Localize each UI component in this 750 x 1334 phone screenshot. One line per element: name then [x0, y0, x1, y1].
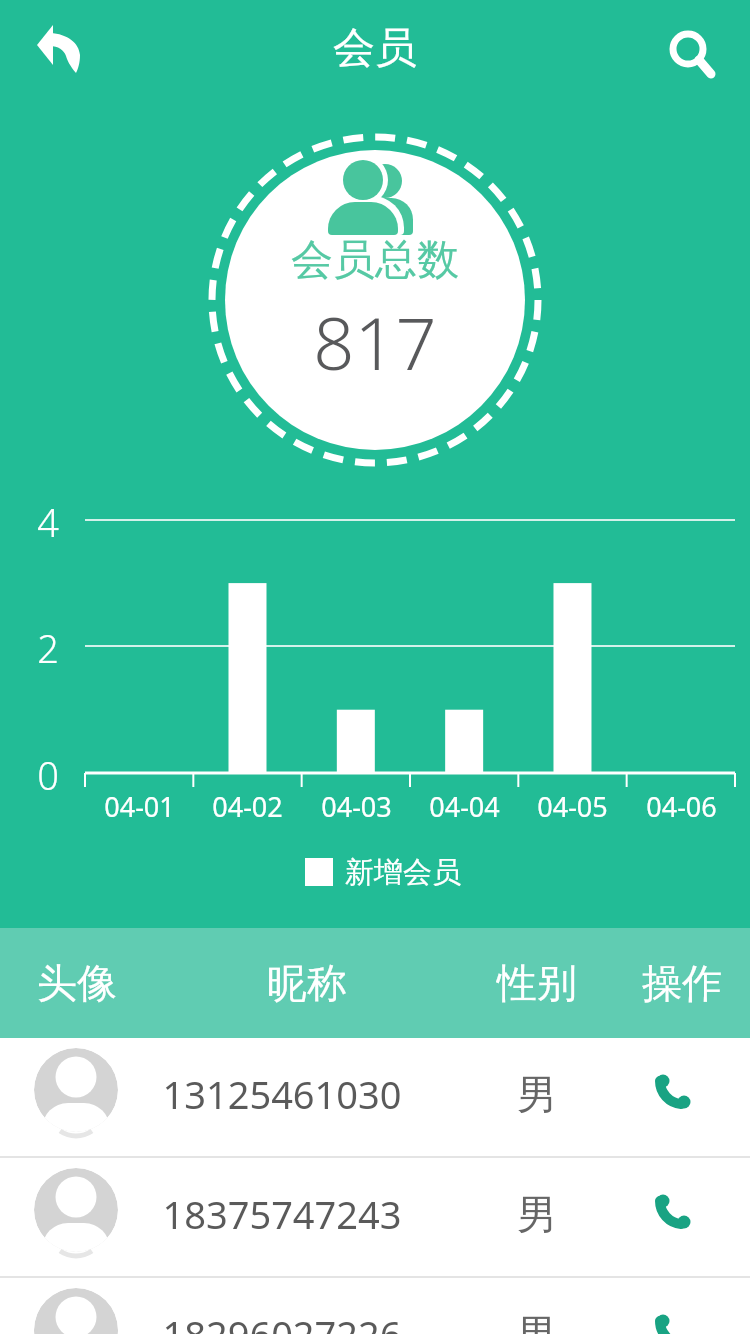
- staticText: 4: [37, 496, 59, 544]
- staticText: 04-01: [104, 788, 175, 825]
- staticText: 男: [517, 1309, 557, 1334]
- staticText: 昵称: [267, 958, 347, 1008]
- button[interactable]: 18296027226: [0, 1278, 750, 1334]
- staticText: 新增会员: [345, 854, 461, 891]
- staticText: 18296027226: [162, 1308, 402, 1334]
- staticText: 会员: [333, 22, 417, 75]
- staticText: 操作: [642, 958, 722, 1008]
- staticText: 2: [37, 622, 59, 670]
- staticText: 04-03: [321, 788, 392, 825]
- button[interactable]: 13125461030: [0, 1038, 750, 1158]
- staticText: 04-04: [429, 788, 500, 825]
- staticText: 男: [517, 1189, 557, 1239]
- staticText: 04-02: [212, 788, 283, 825]
- staticText: 13125461030: [162, 1068, 402, 1120]
- staticText: 男: [517, 1069, 557, 1119]
- button[interactable]: [646, 1304, 702, 1334]
- staticText: 0: [37, 749, 59, 797]
- staticText: 18375747243: [162, 1188, 402, 1240]
- button[interactable]: [646, 1064, 702, 1120]
- staticText: 性别: [497, 958, 577, 1008]
- button[interactable]: 18375747243: [0, 1158, 750, 1278]
- button[interactable]: [25, 14, 93, 82]
- staticText: 817: [313, 293, 437, 391]
- staticText: 04-05: [537, 788, 608, 825]
- staticText: 会员总数: [291, 234, 459, 287]
- button[interactable]: [658, 18, 722, 82]
- staticText: 头像: [37, 958, 117, 1008]
- staticText: 04-06: [646, 788, 717, 825]
- button[interactable]: [646, 1184, 702, 1240]
